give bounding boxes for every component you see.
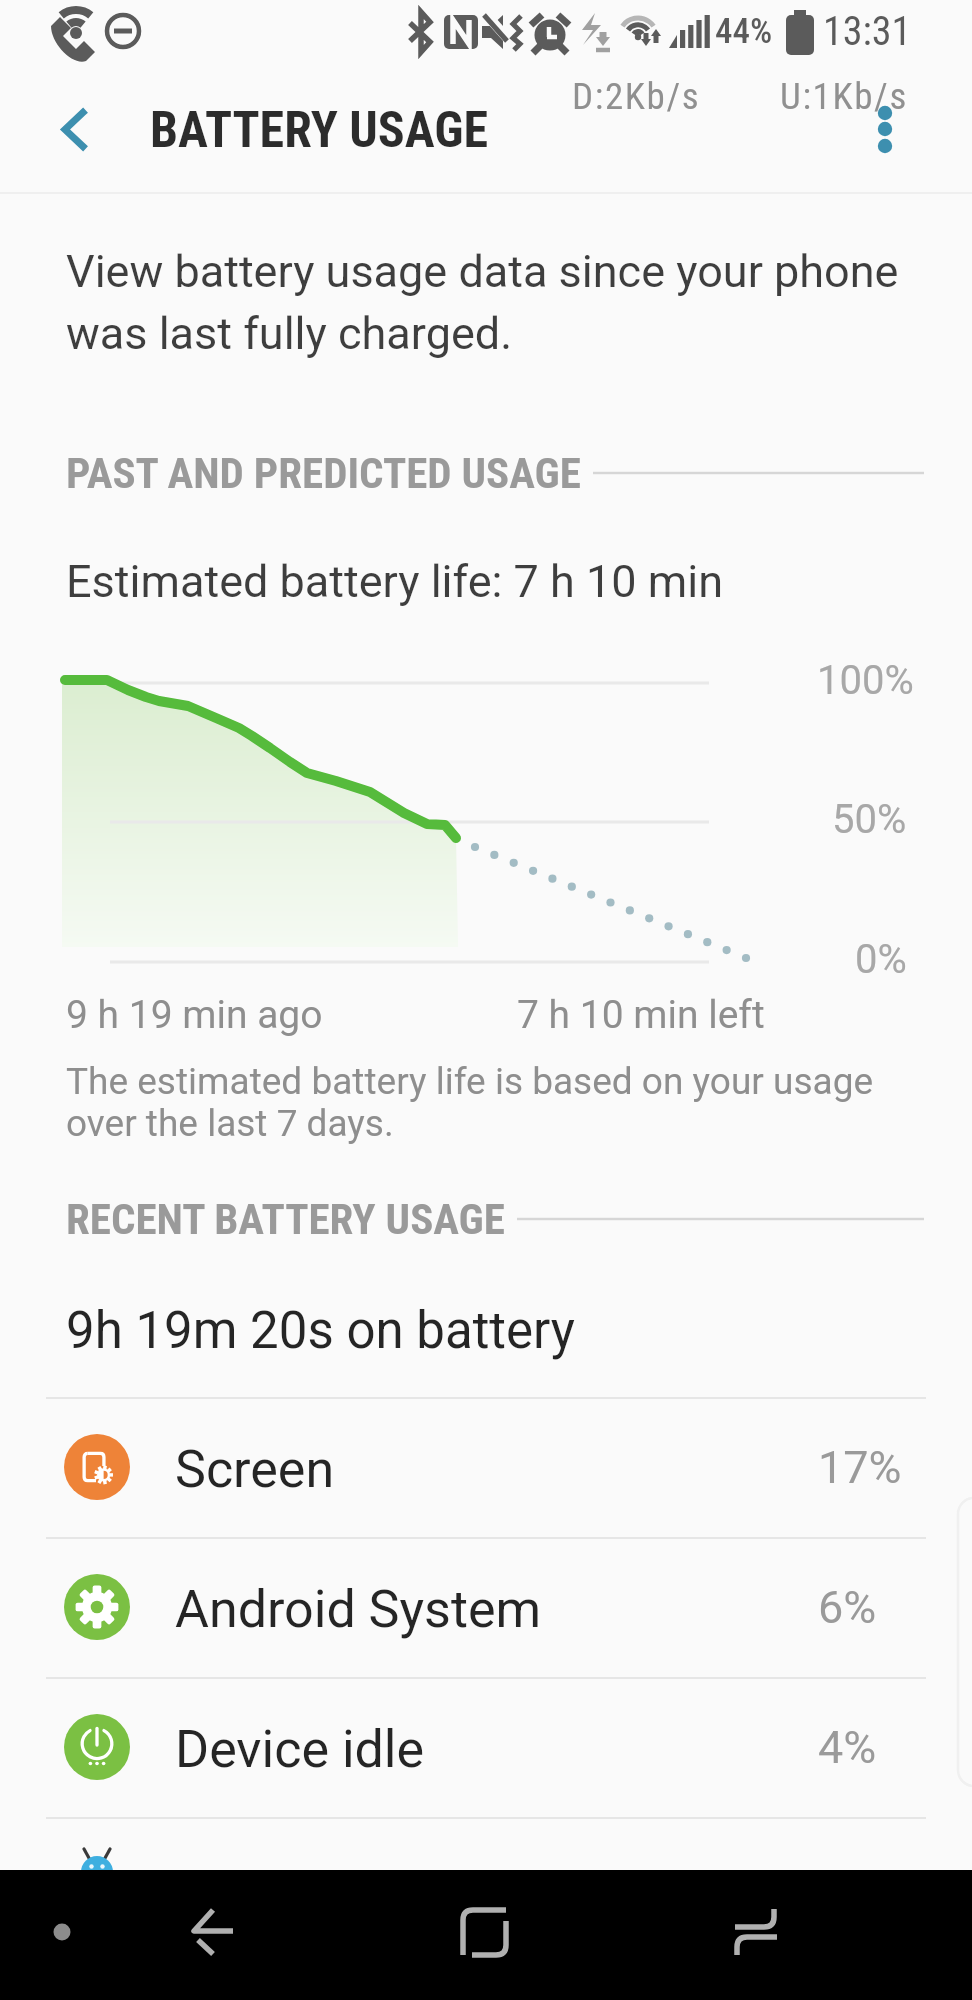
button[interactable]: Android System bbox=[0, 1537, 972, 1677]
staticText: Screen bbox=[175, 1439, 335, 1500]
button[interactable]: Home bbox=[324, 1870, 648, 2000]
button[interactable]: More options bbox=[845, 68, 972, 186]
staticText: 17% bbox=[818, 1441, 902, 1494]
staticText: 44% bbox=[715, 11, 773, 52]
button[interactable]: Navigate up bbox=[0, 68, 150, 186]
staticText: Android System bbox=[175, 1579, 542, 1640]
button[interactable]: Back bbox=[0, 1870, 324, 2000]
staticText: 9 h 19 min ago bbox=[66, 992, 323, 1038]
staticText: 6% bbox=[818, 1581, 877, 1634]
staticText: D:2Kb/s bbox=[572, 75, 701, 118]
staticText: 50% bbox=[832, 796, 907, 843]
staticText: 7 h 10 min left bbox=[517, 992, 765, 1038]
staticText: 9h 19m 20s on battery bbox=[66, 1301, 575, 1361]
button[interactable]: Recent apps bbox=[648, 1870, 972, 2000]
button[interactable]: Device idle bbox=[0, 1677, 972, 1817]
staticText: RECENT BATTERY USAGE bbox=[66, 1194, 505, 1244]
staticText: View battery usage data since your phone… bbox=[66, 245, 899, 360]
staticText: BATTERY USAGE bbox=[150, 101, 488, 160]
staticText: Estimated battery life: 7 h 10 min bbox=[66, 555, 724, 608]
staticText: 13:31 bbox=[823, 8, 912, 55]
staticText: 100% bbox=[817, 657, 914, 704]
staticText: The estimated battery life is based on y… bbox=[66, 1060, 874, 1145]
button[interactable]: Screen bbox=[0, 1397, 972, 1537]
staticText: 0% bbox=[855, 936, 907, 983]
staticText: PAST AND PREDICTED USAGE bbox=[66, 448, 581, 498]
staticText: 4% bbox=[818, 1721, 877, 1774]
staticText: Device idle bbox=[175, 1719, 425, 1780]
staticText: U:1Kb/s bbox=[780, 75, 908, 118]
